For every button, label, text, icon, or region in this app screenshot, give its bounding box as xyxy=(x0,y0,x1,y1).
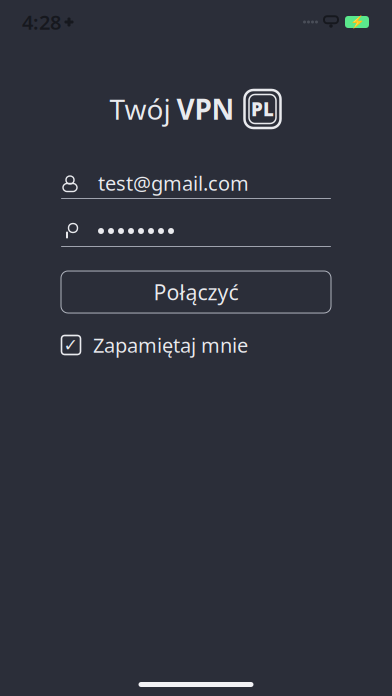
staticText: 4:28 xyxy=(22,9,61,35)
staticText: VPN xyxy=(176,90,234,128)
button[interactable]: Połączyć xyxy=(61,271,331,313)
staticText: Twój xyxy=(109,90,170,128)
staticText: ⚡ xyxy=(349,15,364,29)
staticText: ✓ xyxy=(63,335,78,355)
staticText: Połączyć xyxy=(153,278,238,306)
button[interactable]: ✓ xyxy=(61,331,331,359)
staticText: Zapamiętaj mnie xyxy=(93,332,248,358)
staticText: test@gmail.com xyxy=(98,170,249,196)
staticText: PL xyxy=(251,97,274,121)
